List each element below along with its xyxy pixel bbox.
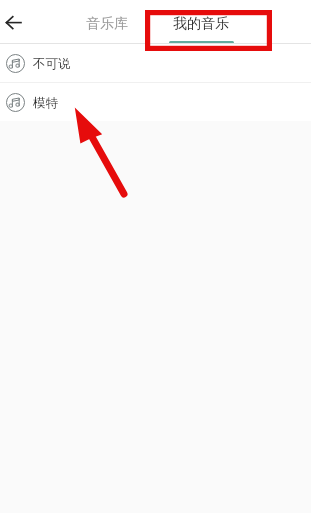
staticText: 音乐库: [86, 15, 128, 33]
staticText: 模特: [33, 95, 58, 111]
staticText: 我的音乐: [173, 15, 229, 33]
button[interactable]: Back: [0, 0, 40, 43]
button[interactable]: 模特: [0, 83, 311, 121]
button[interactable]: 我的音乐: [156, 0, 246, 43]
staticText: 不可说: [33, 56, 71, 72]
button[interactable]: 音乐库: [62, 0, 152, 43]
button[interactable]: 不可说: [0, 44, 311, 82]
